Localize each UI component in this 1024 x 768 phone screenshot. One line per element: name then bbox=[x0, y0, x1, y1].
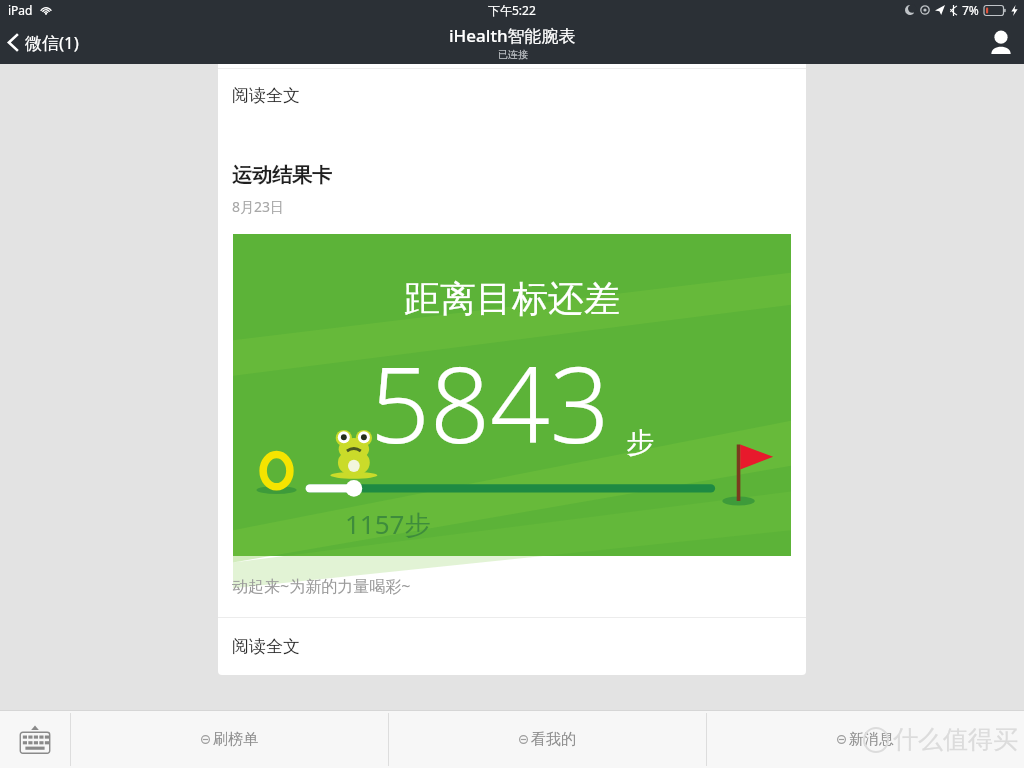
button[interactable]: 看我的 bbox=[389, 711, 706, 768]
button[interactable]: Hide keyboard bbox=[0, 711, 70, 768]
staticText: 1157步 bbox=[345, 506, 431, 542]
button[interactable]: Contact profile bbox=[978, 22, 1024, 62]
button[interactable]: 阅读全文 bbox=[218, 618, 806, 675]
staticText: 阅读全文 bbox=[232, 636, 300, 657]
staticText: 刷榜单 bbox=[213, 730, 258, 749]
staticText: 新消息 bbox=[849, 730, 894, 749]
button[interactable]: 距离目标还差 bbox=[233, 234, 791, 556]
staticText: 下午5:22 bbox=[488, 2, 536, 18]
staticText: 阅读全文 bbox=[232, 85, 300, 106]
button[interactable]: 新消息 bbox=[707, 711, 1024, 768]
staticText: 8月23日 bbox=[232, 197, 285, 216]
staticText: 距离目标还差 bbox=[404, 276, 620, 321]
staticText: iHealth智能腕表 bbox=[449, 24, 576, 47]
staticText: 步 bbox=[626, 425, 654, 460]
staticText: 7% bbox=[962, 2, 979, 18]
staticText: 5843 bbox=[370, 331, 610, 474]
staticText: 运动结果卡 bbox=[232, 163, 332, 188]
staticText: 什么值得买 bbox=[893, 724, 1018, 755]
button[interactable]: 微信(1) bbox=[0, 25, 91, 60]
staticText: 动起来~为新的力量喝彩~ bbox=[232, 575, 411, 597]
staticText: 已连接 bbox=[498, 48, 528, 61]
button[interactable]: 阅读全文 bbox=[218, 69, 806, 121]
staticText: 微信(1) bbox=[25, 31, 79, 54]
button[interactable]: 刷榜单 bbox=[71, 711, 388, 768]
staticText: iPad bbox=[8, 2, 33, 18]
staticText: 看我的 bbox=[531, 730, 576, 749]
